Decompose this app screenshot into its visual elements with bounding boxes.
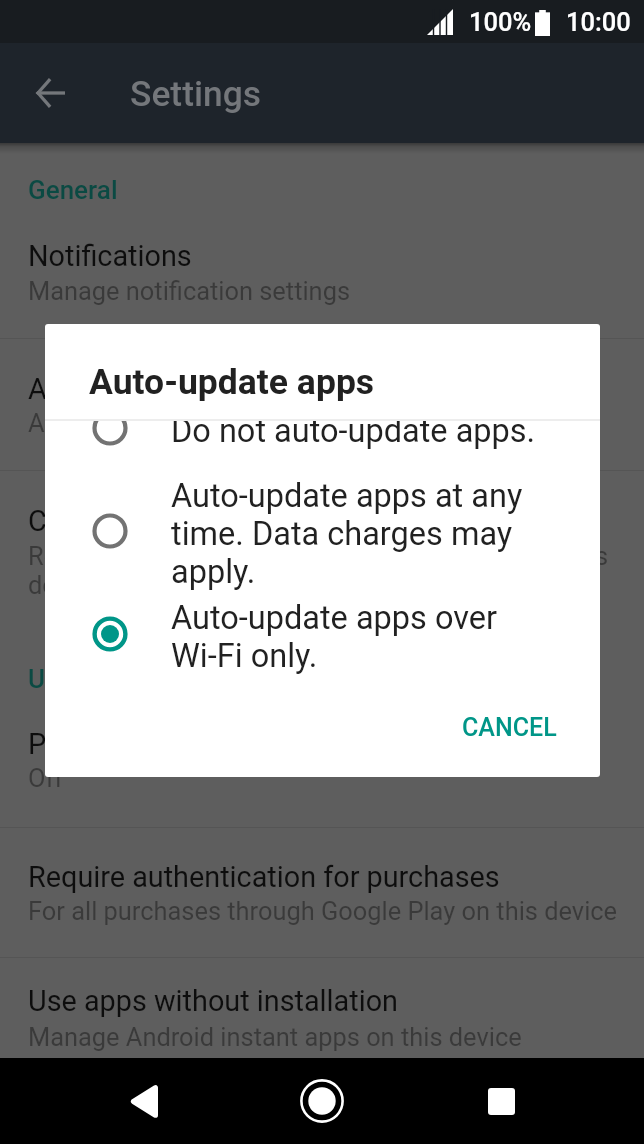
button[interactable] (45, 421, 600, 459)
staticText: General (28, 175, 118, 205)
staticText: Use apps without installation (28, 984, 399, 1018)
staticText: 100% (469, 7, 532, 37)
staticText: Auto-update apps (89, 361, 375, 403)
staticText: Auto-update apps over Wi-Fi only. (171, 599, 543, 675)
staticText: Auto-update apps over Wi-Fi only (28, 408, 398, 438)
staticText: Notifications (28, 239, 192, 273)
button[interactable] (0, 699, 644, 827)
staticText: Off (28, 763, 64, 793)
staticText: Auto-update apps at any time. Data charg… (171, 477, 543, 591)
staticText: CANCEL (462, 713, 557, 742)
staticText: Settings (130, 73, 262, 114)
button[interactable] (0, 471, 644, 636)
button[interactable] (0, 339, 644, 470)
staticText: Remove the searches you have done on the… (28, 541, 609, 600)
button[interactable]: Recent apps (461, 1058, 541, 1144)
staticText: Require authentication for purchases (28, 860, 500, 894)
staticText: Parental controls (28, 727, 247, 761)
staticText: User controls (28, 664, 184, 694)
button[interactable] (45, 468, 600, 599)
staticText: Manage Android instant apps on this devi… (28, 1022, 522, 1052)
staticText: Do not auto-update apps. (171, 421, 536, 450)
button[interactable] (0, 958, 644, 1058)
button[interactable] (0, 828, 644, 957)
staticText: For all purchases through Google Play on… (28, 896, 618, 926)
staticText: 10:00 (566, 7, 631, 37)
staticText: Clear local search history (28, 504, 351, 538)
button[interactable]: CANCEL (447, 701, 572, 754)
staticText: Manage notification settings (28, 276, 351, 306)
button[interactable]: Home (282, 1058, 362, 1144)
button[interactable]: Back (22, 65, 78, 121)
button[interactable]: Back (103, 1058, 183, 1144)
button[interactable] (0, 206, 644, 338)
staticText: Auto-update apps (28, 372, 255, 406)
button[interactable] (45, 590, 600, 683)
